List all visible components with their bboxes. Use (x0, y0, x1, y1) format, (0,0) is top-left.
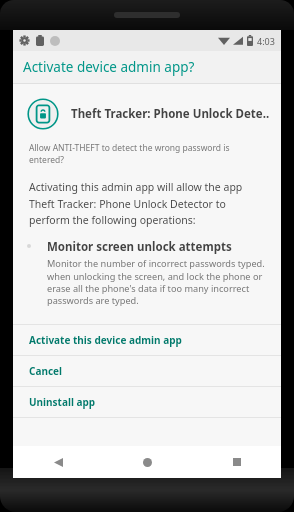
staticText: Activating this admin app will allow the… (29, 180, 259, 227)
staticText: Allow ANTI-THEFT to detect the wrong pas… (29, 142, 263, 166)
staticText: Monitor the number of incorrect password… (47, 257, 267, 307)
staticText: Uninstall app (29, 395, 96, 409)
staticText: Cancel (29, 364, 63, 378)
button[interactable]: Uninstall app (13, 387, 281, 417)
staticText: Monitor screen unlock attempts (47, 239, 232, 255)
button[interactable]: Recent apps (192, 446, 281, 478)
button[interactable]: Home (103, 446, 192, 478)
button[interactable]: Back (13, 446, 103, 478)
staticText: Activate this device admin app (29, 333, 182, 347)
button[interactable]: Activate this device admin app (13, 325, 281, 355)
staticText: 4:03 (257, 35, 275, 47)
staticText: Activate device admin app? (23, 58, 195, 76)
staticText: Theft Tracker: Phone Unlock Dete.. (71, 106, 270, 122)
button[interactable]: Cancel (13, 356, 281, 386)
